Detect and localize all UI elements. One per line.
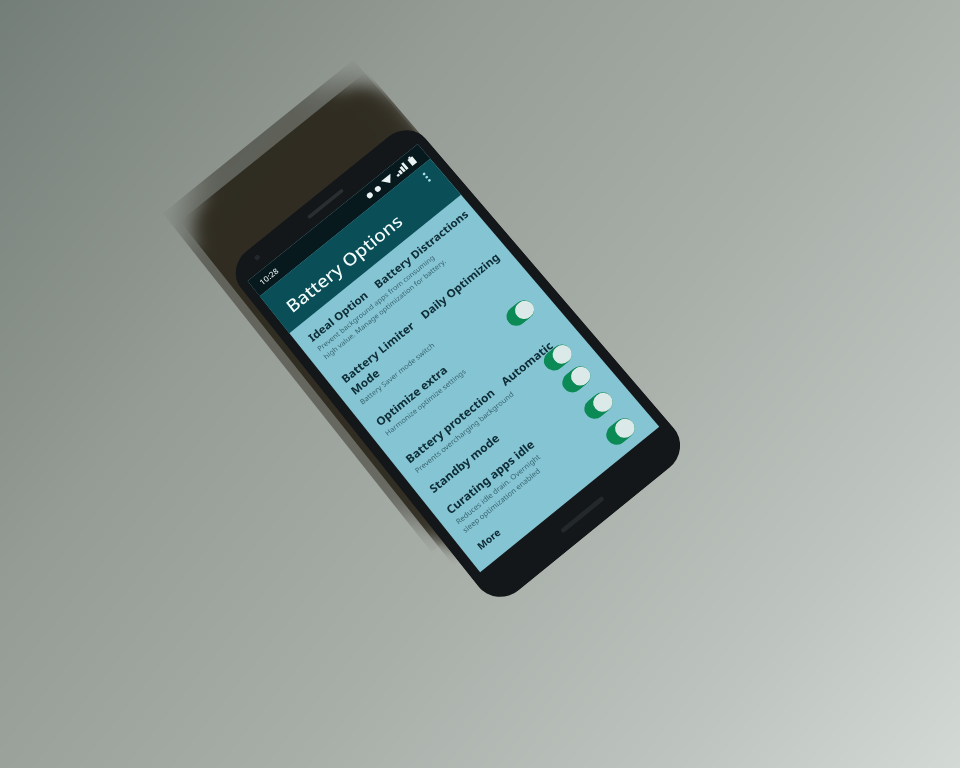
staticText: Ideal Option Battery Distractions (305, 207, 472, 345)
staticText: Battery protection Automatic (402, 338, 556, 467)
staticText: Optimize extra (373, 362, 451, 429)
staticText: sleep optimization enabled (460, 465, 542, 534)
button[interactable]: Toggle setting (502, 296, 538, 330)
button[interactable]: Toggle setting (602, 414, 639, 449)
button[interactable]: Toggle setting (580, 388, 617, 423)
staticText: 10:28 (257, 265, 281, 287)
button[interactable]: More options (412, 163, 442, 192)
button[interactable]: Standby mode (426, 341, 613, 496)
staticText: Battery Limiter Daily Optimizing Mode (338, 244, 519, 398)
staticText: Curating apps idle (443, 436, 538, 517)
button[interactable]: Optimize extra (373, 276, 564, 438)
staticText: Prevent background apps from consuming (315, 253, 436, 353)
staticText: More (474, 525, 503, 553)
staticText: high value. Manage optimization for batt… (321, 257, 448, 361)
staticText: Reduces idle drain. Overnight (453, 451, 542, 526)
button[interactable]: Curating apps idle (443, 361, 644, 535)
staticText: Battery Options (281, 209, 407, 317)
button[interactable]: Battery Limiter Daily Optimizing Mode (338, 235, 538, 406)
staticText: Harmonize optimize settings (383, 366, 468, 438)
staticText: Prevents overcharging background (413, 389, 516, 475)
staticText: Battery Saver mode switch (358, 340, 436, 406)
button[interactable]: Battery protection Automatic (402, 312, 595, 475)
button[interactable]: Ideal Option Battery Distractions (305, 195, 500, 361)
staticText: Standby mode (426, 430, 503, 496)
button[interactable]: Toggle setting (558, 362, 595, 397)
button[interactable]: Toggle setting (540, 340, 576, 375)
